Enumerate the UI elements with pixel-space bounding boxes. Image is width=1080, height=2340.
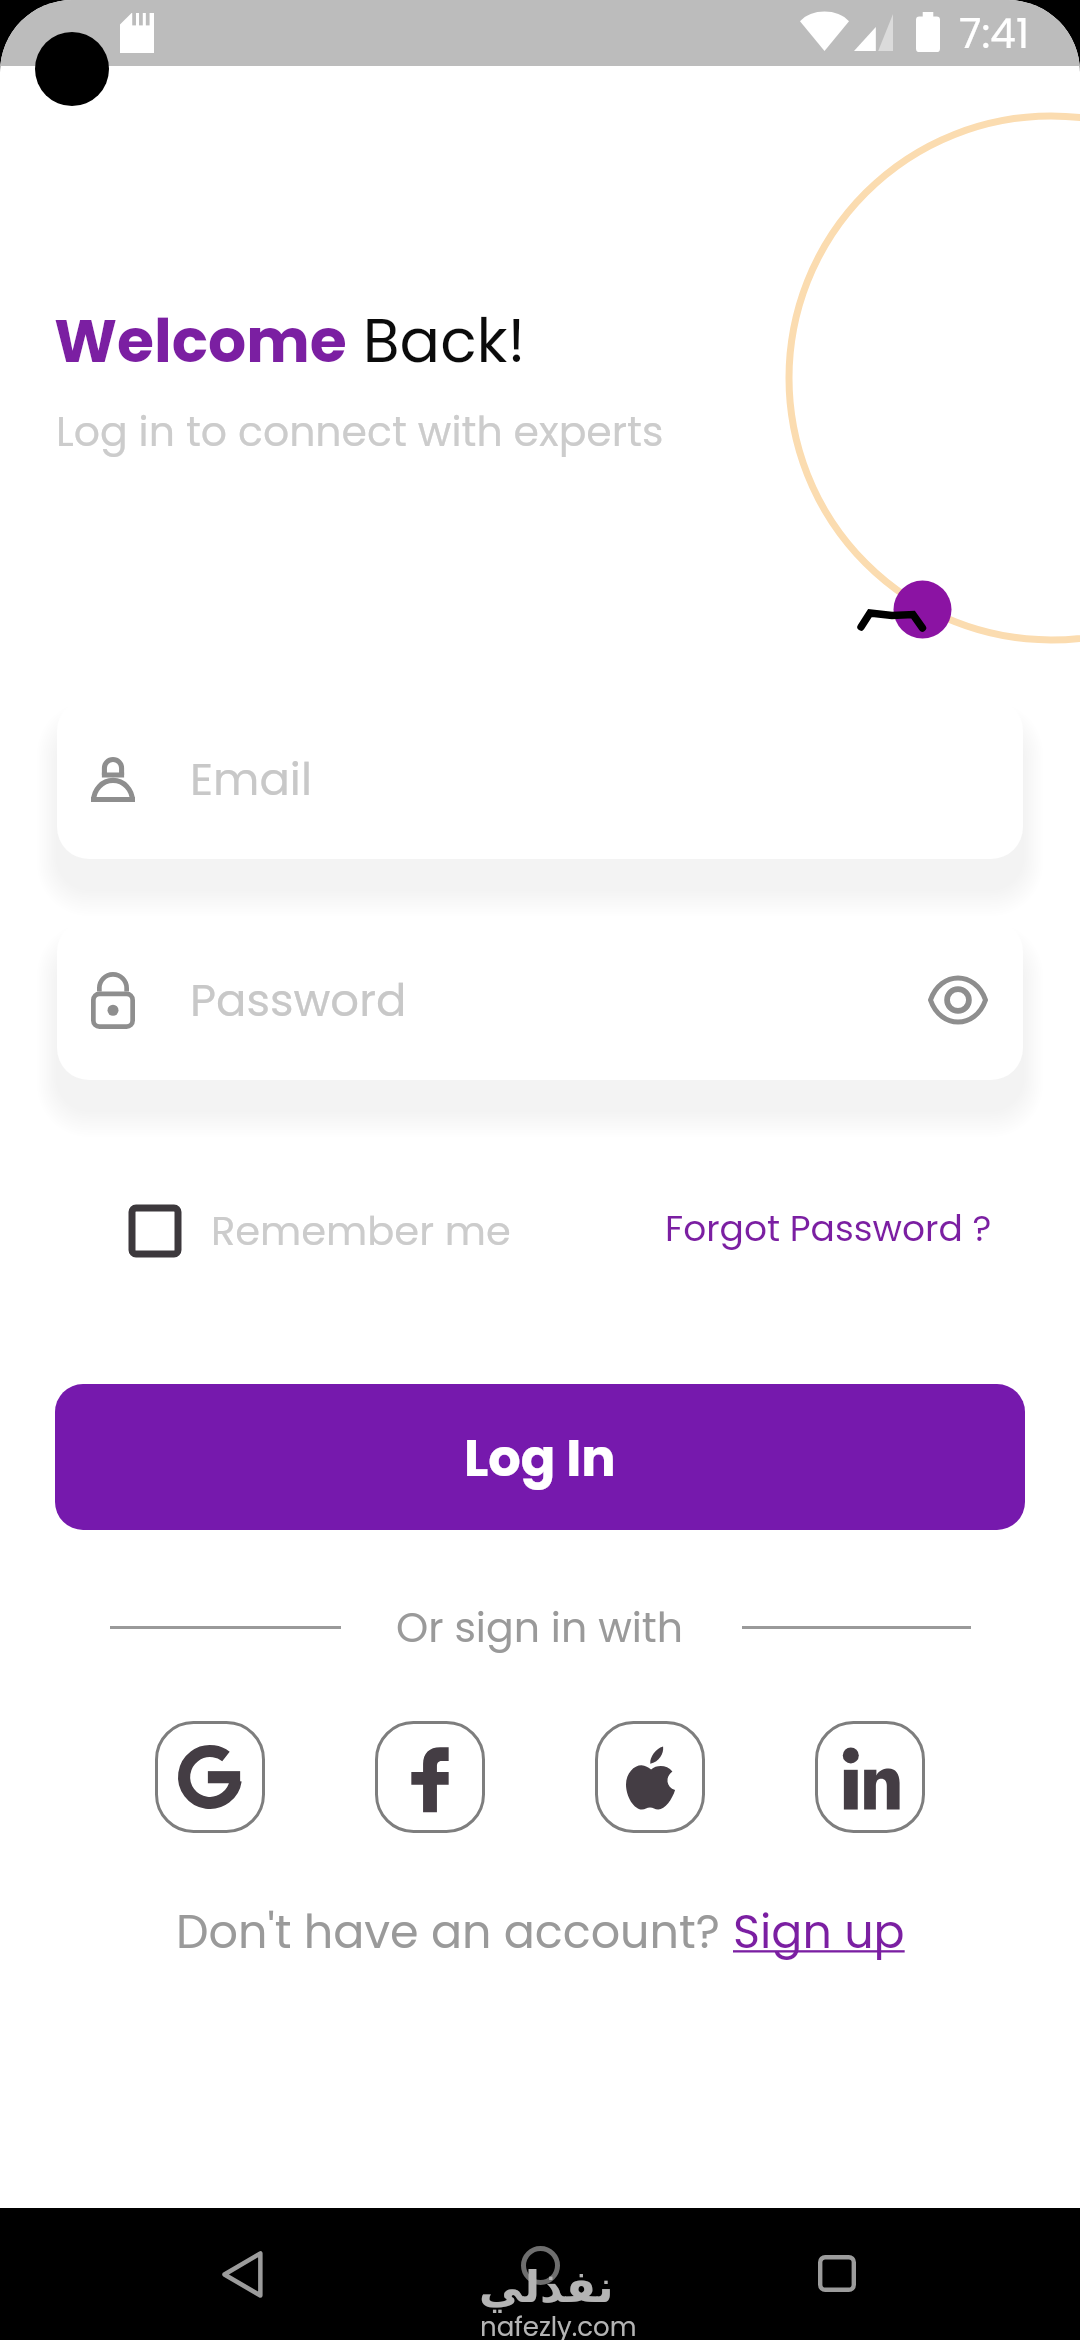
button[interactable]: Forgot Password ? (665, 1203, 992, 1253)
staticText: nafezly.com (480, 2309, 637, 2340)
staticText: Don't have an account? (176, 1900, 733, 1964)
button[interactable]: Log In (55, 1384, 1025, 1530)
button[interactable]: Sign in with Apple (595, 1721, 705, 1833)
button[interactable]: Remember me (129, 1203, 511, 1259)
button[interactable]: Password (57, 920, 1023, 1080)
staticText: Remember me (211, 1203, 511, 1259)
button[interactable]: Sign in with LinkedIn (815, 1721, 925, 1833)
button[interactable]: Back (212, 2241, 274, 2303)
staticText: Password (190, 969, 407, 1032)
button[interactable]: Email (57, 699, 1023, 859)
staticText: Forgot Password ? (665, 1203, 992, 1253)
staticText: 7:41 (959, 5, 1030, 62)
staticText: Sign up (733, 1900, 905, 1964)
button[interactable]: Sign in with Google (155, 1721, 265, 1833)
button[interactable]: Show password (923, 968, 993, 1032)
staticText: Log in to connect with experts (56, 403, 664, 460)
button[interactable]: Sign in with Facebook (375, 1721, 485, 1833)
staticText: Or sign in with (396, 1599, 683, 1656)
staticText: Email (190, 748, 312, 811)
button[interactable]: Recent apps (818, 2255, 856, 2292)
staticText: Welcome Back! (54, 299, 526, 383)
staticText: Log In (464, 1422, 616, 1493)
button[interactable]: Sign up (733, 1900, 905, 1964)
staticText: نفذلي (479, 2261, 614, 2312)
